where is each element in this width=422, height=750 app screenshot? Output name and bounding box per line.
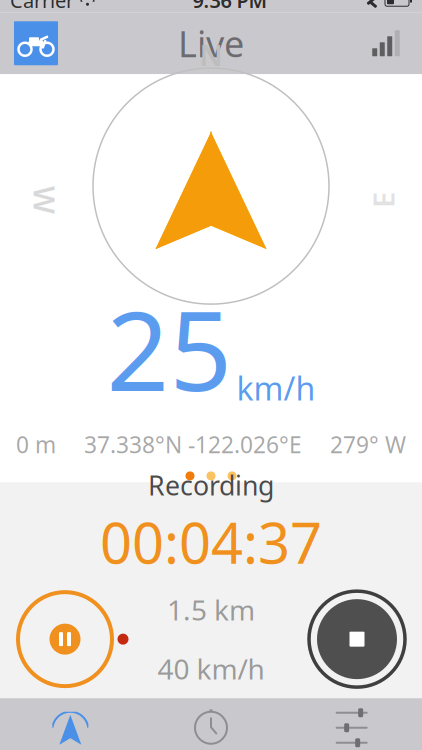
button[interactable]: Pause recording — [13, 587, 117, 691]
button[interactable]: Vehicle profile — [14, 21, 58, 65]
staticText: 1.5 km — [167, 591, 255, 628]
staticText: N — [199, 35, 222, 74]
staticText: 279° W — [330, 429, 406, 459]
staticText: 0 m — [16, 429, 56, 459]
staticText: 9:36 PM — [192, 0, 267, 14]
staticText: 37.338°N -122.026°E — [84, 429, 302, 459]
button[interactable]: Live — [0, 704, 141, 750]
staticText: W — [31, 181, 59, 220]
staticText: 00:04:37 — [100, 505, 322, 579]
staticText: 40 km/h — [157, 650, 264, 687]
staticText: 25 — [106, 276, 232, 421]
staticText: Live — [178, 19, 244, 67]
staticText: km/h — [236, 367, 315, 409]
button[interactable]: Stop recording — [305, 587, 409, 691]
button[interactable]: Settings — [281, 704, 422, 750]
staticText: E — [375, 181, 391, 220]
button[interactable]: Signal quality — [364, 21, 408, 65]
button[interactable]: History — [141, 704, 281, 750]
staticText: Carrier — [10, 0, 74, 14]
staticText: Recording — [148, 467, 274, 503]
